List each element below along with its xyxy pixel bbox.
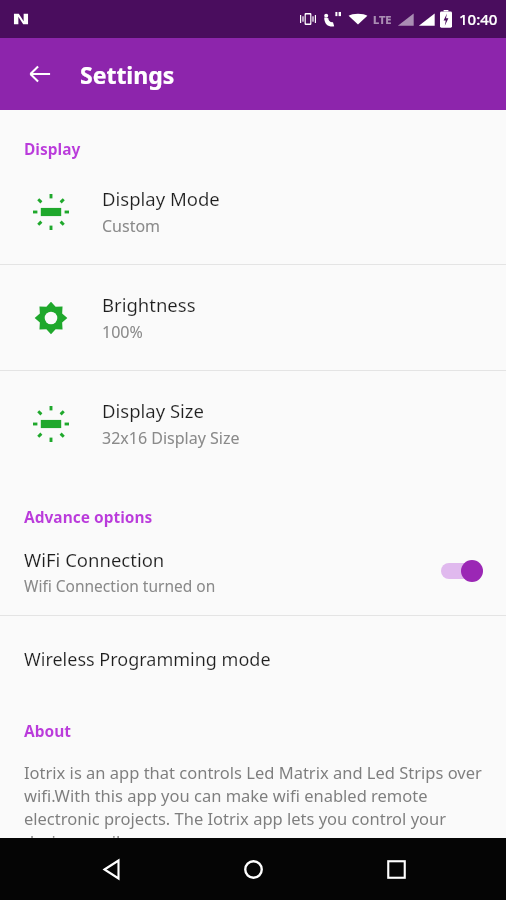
staticText: 32x16 Display Size: [102, 427, 240, 449]
staticText: Iotrix is an app that controls Led Matri…: [24, 761, 484, 838]
button[interactable]: WiFi Connection: [0, 527, 506, 615]
staticText: Wifi Connection turned on: [24, 575, 216, 596]
button[interactable]: Back: [16, 50, 64, 98]
button[interactable]: Display Mode: [0, 159, 506, 264]
staticText: Display Mode: [102, 186, 220, 211]
staticText: Display: [24, 138, 81, 159]
staticText: Advance options: [24, 506, 153, 527]
button[interactable]: Display Size: [0, 371, 506, 476]
button[interactable]: WiFi Connection toggle: [434, 551, 488, 591]
staticText: WiFi Connection: [24, 547, 165, 572]
staticText: Brightness: [102, 292, 196, 317]
staticText: Wireless Programming mode: [24, 647, 271, 672]
button[interactable]: Home: [221, 838, 285, 900]
staticText: LTE: [373, 12, 392, 27]
button[interactable]: Recent apps: [364, 838, 428, 900]
staticText: About: [24, 720, 72, 741]
button[interactable]: Brightness: [0, 265, 506, 370]
staticText: 100%: [102, 321, 143, 343]
button[interactable]: Wireless Programming mode: [0, 616, 506, 702]
staticText: Custom: [102, 215, 161, 237]
staticText: Display Size: [102, 398, 204, 423]
staticText: Settings: [80, 59, 175, 90]
staticText: 10:40: [459, 9, 498, 29]
button[interactable]: Back: [79, 838, 143, 900]
